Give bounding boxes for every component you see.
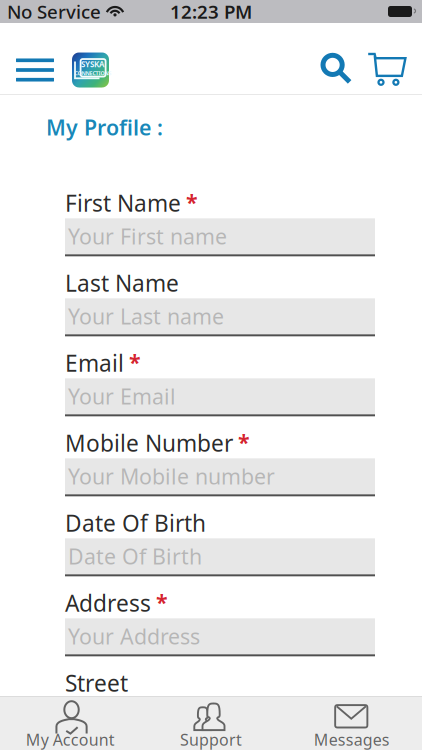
staticText: * — [238, 428, 250, 456]
staticText: Date Of Birth — [68, 542, 202, 570]
button[interactable]: Cart — [362, 46, 412, 94]
button[interactable]: Menu — [13, 46, 57, 94]
button[interactable]: Messages — [281, 697, 422, 750]
staticText: Address — [65, 588, 151, 618]
staticText: SYSKA — [81, 59, 105, 69]
staticText: * — [186, 188, 198, 216]
staticText: Support — [180, 729, 242, 750]
staticText: No Service — [7, 0, 101, 24]
staticText: Your Email — [68, 382, 176, 410]
staticText: Your Address — [68, 622, 200, 650]
staticText: Messages — [314, 729, 390, 750]
staticText: Street — [65, 668, 128, 698]
staticText: Email — [65, 348, 124, 378]
staticText: Mobile Number — [65, 428, 233, 458]
staticText: My Account — [26, 729, 115, 750]
staticText: Your First name — [68, 222, 227, 250]
staticText: * — [129, 348, 141, 376]
button[interactable]: Home — [57, 46, 124, 94]
button[interactable]: Support — [141, 697, 281, 750]
staticText: CONNECTIONS — [75, 70, 112, 77]
staticText: First Name — [65, 188, 181, 218]
staticText: My Profile : — [46, 113, 163, 141]
staticText: Your Mobile number — [68, 462, 275, 490]
staticText: 12:23 PM — [170, 0, 252, 24]
staticText: * — [156, 588, 168, 616]
button[interactable]: Search — [312, 46, 362, 94]
staticText: Date Of Birth — [65, 508, 206, 538]
staticText: Your Street — [68, 702, 180, 730]
button[interactable]: My Account — [0, 697, 141, 750]
staticText: Last Name — [65, 268, 179, 298]
staticText: Your Last name — [68, 302, 224, 330]
